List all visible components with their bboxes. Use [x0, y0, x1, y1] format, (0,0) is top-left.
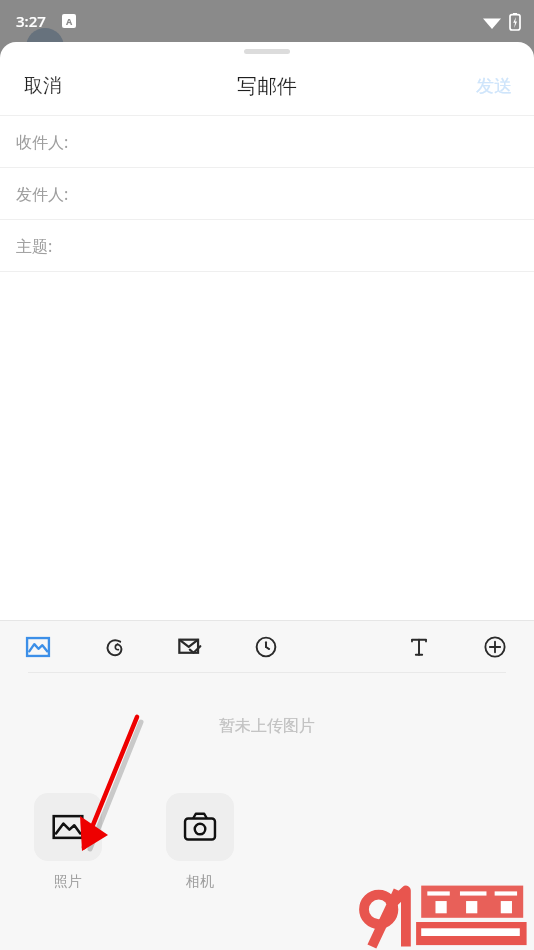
- button[interactable]: 主题:: [0, 220, 534, 271]
- staticText: 3:27: [16, 11, 46, 31]
- button[interactable]: More options: [473, 625, 517, 669]
- staticText: 主题:: [16, 235, 53, 257]
- staticText: 发件人:: [16, 183, 69, 205]
- button[interactable]: 发送: [454, 63, 534, 110]
- staticText: 暂未上传图片: [219, 716, 315, 736]
- button[interactable]: 取消: [0, 62, 86, 110]
- staticText: 照片: [54, 873, 82, 891]
- button[interactable]: Schedule send: [244, 625, 288, 669]
- button[interactable]: Read receipt: [168, 625, 212, 669]
- staticText: 收件人:: [16, 131, 69, 153]
- staticText: 取消: [24, 74, 62, 98]
- button[interactable]: 收件人:: [0, 116, 534, 167]
- button[interactable]: 相机: [166, 793, 234, 891]
- staticText: 写邮件: [237, 74, 297, 99]
- button[interactable]: 发件人:: [0, 168, 534, 219]
- staticText: A: [66, 15, 73, 27]
- button[interactable]: 照片: [34, 793, 102, 891]
- button[interactable]: Insert image: [16, 625, 60, 669]
- staticText: 相机: [186, 873, 214, 891]
- button[interactable]: Text formatting: [397, 625, 441, 669]
- button[interactable]: Signature: [92, 625, 136, 669]
- staticText: 发送: [476, 75, 512, 98]
